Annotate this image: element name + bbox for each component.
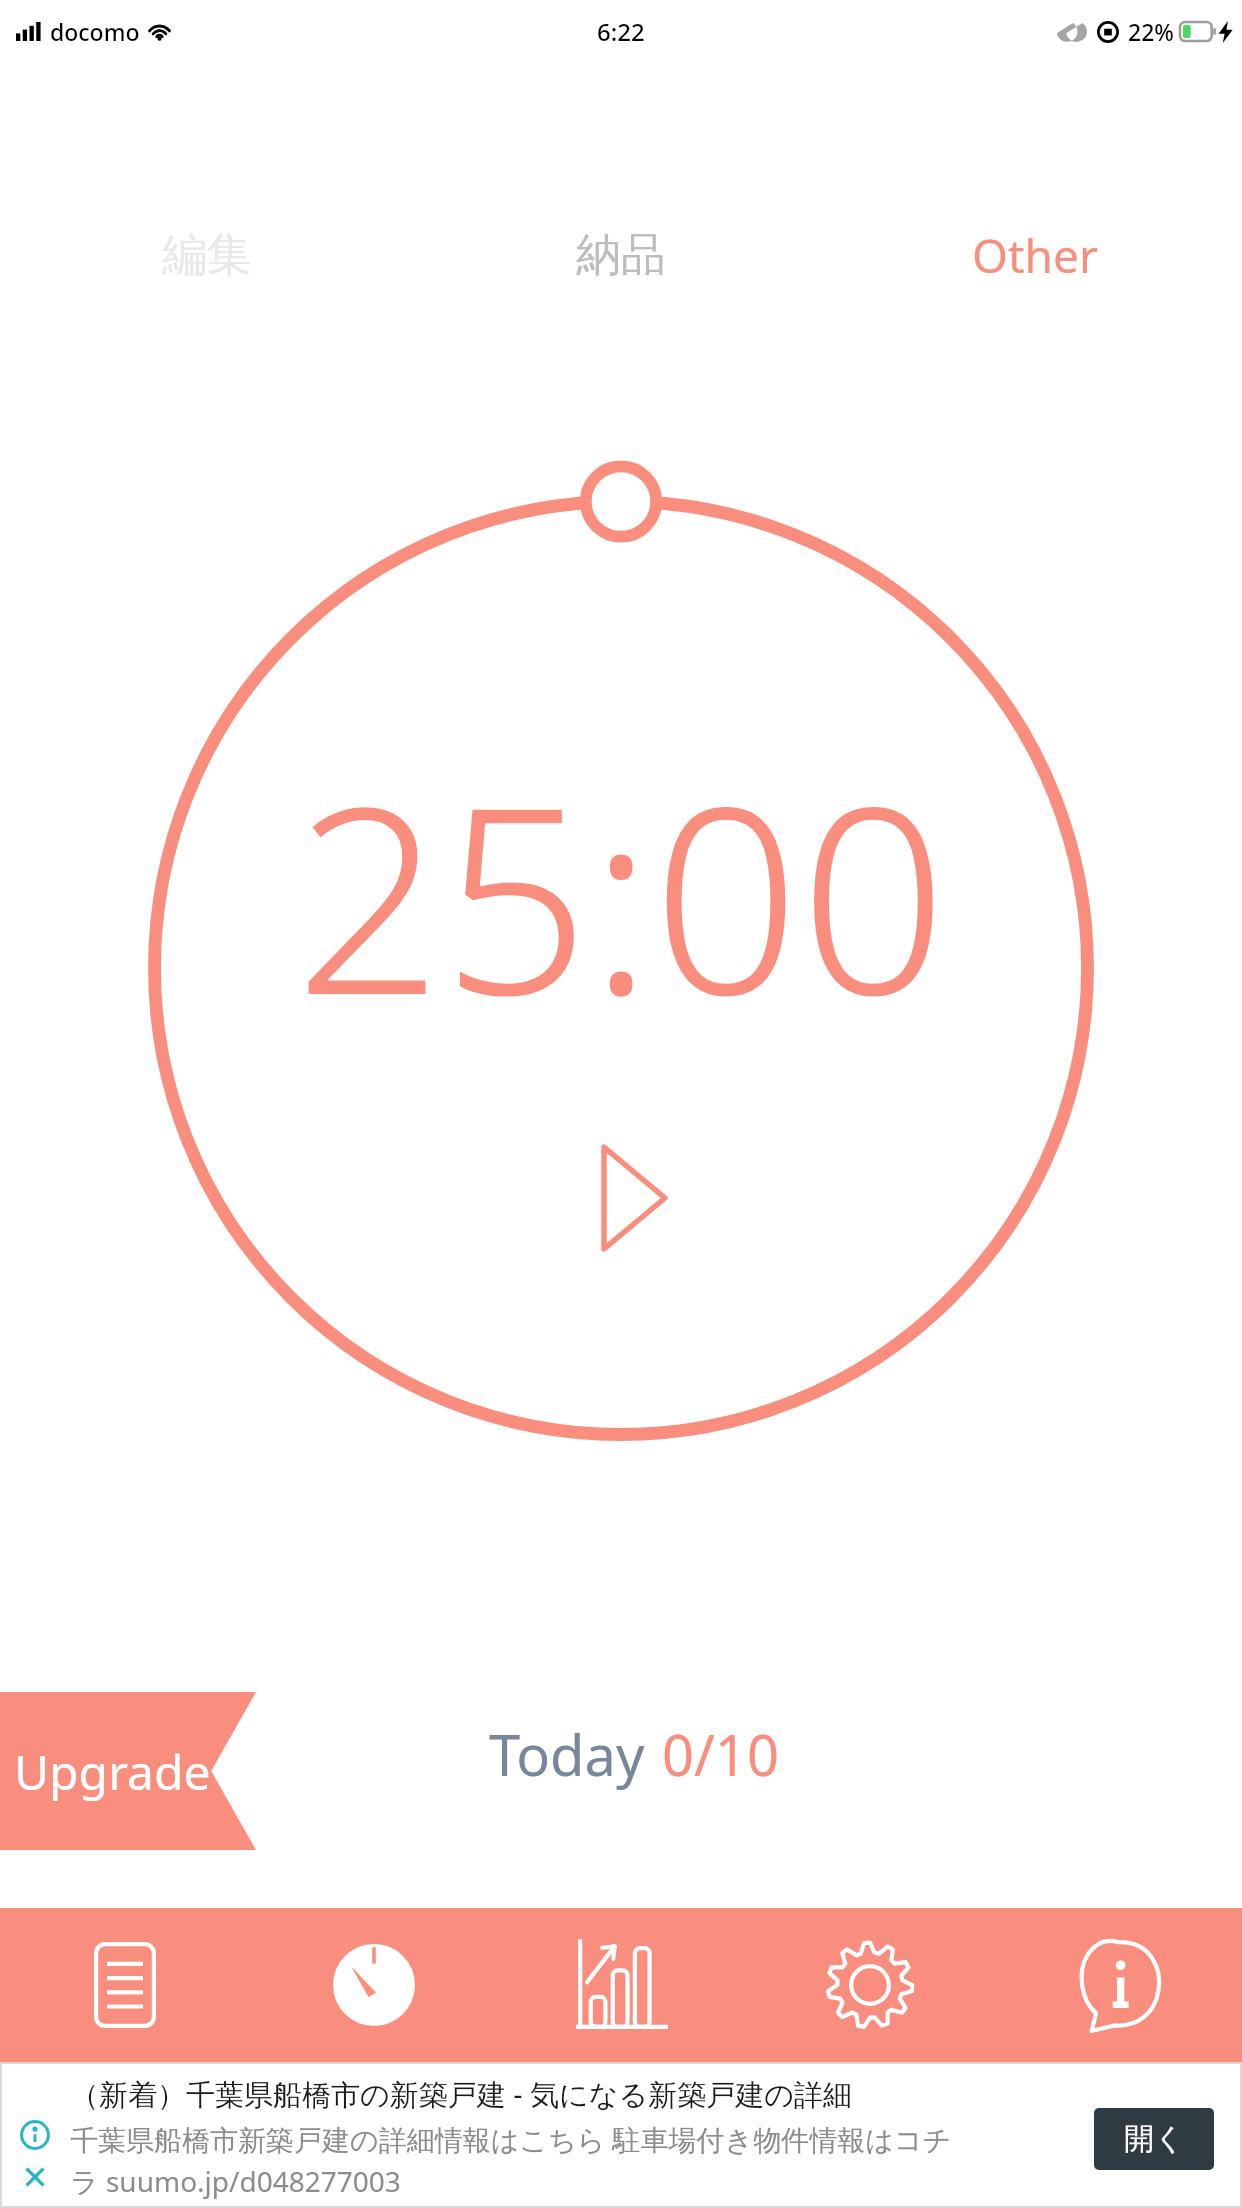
staticText: 0/10	[662, 1716, 779, 1792]
staticText: Upgrade	[14, 1739, 211, 1804]
staticText: 25:00	[0, 718, 1242, 1069]
staticText: 納品	[576, 227, 666, 284]
button[interactable]: Statistics	[498, 1908, 746, 2062]
button[interactable]: 開く	[1094, 2108, 1214, 2170]
staticText: 開く	[1124, 2120, 1185, 2158]
staticText: 編集	[162, 227, 252, 284]
button[interactable]	[0, 1692, 256, 1850]
button[interactable]: 編集	[0, 200, 414, 310]
button[interactable]: Settings	[746, 1908, 994, 2062]
button[interactable]: Information	[994, 1908, 1242, 2062]
button[interactable]: Tasks	[0, 1908, 249, 2062]
staticText: Today	[489, 1716, 645, 1792]
staticText: 6:22	[597, 15, 645, 48]
button[interactable]: Timer dial	[121, 468, 1121, 1468]
staticText: ラ suumo.jp/d048277003	[70, 2162, 401, 2200]
button[interactable]: Start timer	[571, 1142, 671, 1254]
button[interactable]: 納品	[414, 200, 828, 310]
staticText: Other	[972, 224, 1098, 287]
staticText: 千葉県船橋市新築戸建の詳細情報はこちら 駐車場付き物件情報はコチ	[70, 2120, 952, 2158]
staticText: docomo	[50, 16, 140, 47]
button[interactable]: （新着）千葉県船橋市の新築戸建 - 気になる新築戸建の詳細	[2, 2064, 1240, 2206]
button[interactable]: Timer	[249, 1908, 498, 2062]
staticText: 22%	[1128, 16, 1174, 47]
button[interactable]: Other	[828, 200, 1242, 310]
staticText: （新着）千葉県船橋市の新築戸建 - 気になる新築戸建の詳細	[70, 2074, 852, 2114]
